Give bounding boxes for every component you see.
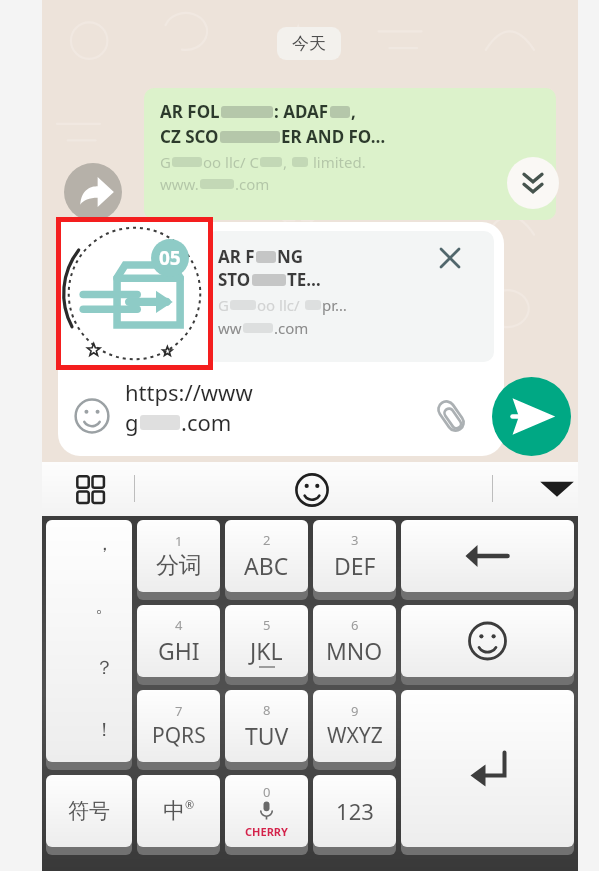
button[interactable]: Forward bbox=[64, 163, 122, 221]
staticText: 3 bbox=[351, 531, 359, 549]
button[interactable]: Keyboard layouts bbox=[72, 471, 110, 509]
staticText: 分词 bbox=[156, 551, 202, 580]
staticText: 9 bbox=[351, 702, 359, 720]
button[interactable]: Close preview bbox=[430, 238, 470, 278]
button[interactable]: Highlighted sticker bbox=[56, 217, 213, 370]
button[interactable]: 3 bbox=[313, 520, 396, 592]
staticText: .com bbox=[235, 174, 270, 194]
staticText: 今天 bbox=[292, 33, 326, 54]
button[interactable]: 9 bbox=[313, 690, 396, 762]
staticText: 中 bbox=[163, 797, 185, 825]
staticText: www. bbox=[160, 174, 199, 194]
staticText: 。 bbox=[95, 594, 114, 618]
button[interactable]: 1 bbox=[137, 520, 220, 592]
staticText: 6 bbox=[351, 616, 359, 634]
button[interactable]: 今天 bbox=[277, 27, 341, 60]
button[interactable]: Backspace bbox=[401, 520, 574, 592]
staticText: TE… bbox=[287, 268, 321, 291]
staticText: 8 bbox=[263, 701, 271, 719]
staticText: CZ SCO bbox=[160, 125, 219, 148]
button[interactable]: AR FOL bbox=[144, 88, 556, 220]
staticText: 123 bbox=[336, 796, 374, 826]
button[interactable]: 7 bbox=[137, 690, 220, 762]
staticText: NG bbox=[277, 245, 304, 268]
staticText: pr… bbox=[322, 295, 347, 315]
staticText: .com bbox=[181, 407, 232, 437]
button[interactable]: Scroll to bottom bbox=[507, 157, 559, 209]
button[interactable]: Attach bbox=[429, 394, 473, 438]
button[interactable]: 8 bbox=[225, 690, 308, 762]
staticText: 0 bbox=[263, 783, 271, 801]
button[interactable]: ， bbox=[46, 520, 132, 762]
button[interactable]: Emoji bbox=[71, 395, 113, 437]
staticText: ® bbox=[185, 797, 195, 812]
staticText: G bbox=[160, 152, 171, 172]
staticText: g bbox=[125, 407, 139, 437]
staticText: GHI bbox=[158, 635, 200, 666]
staticText: 1 bbox=[175, 532, 183, 550]
staticText: https://www bbox=[125, 377, 253, 407]
staticText: MNO bbox=[326, 635, 383, 666]
staticText: JKL bbox=[250, 635, 283, 666]
staticText: oo llc/ C bbox=[203, 152, 259, 172]
staticText: TUV bbox=[245, 720, 289, 751]
staticText: , bbox=[283, 152, 291, 172]
staticText: : ADAF bbox=[274, 100, 329, 123]
staticText: 符号 bbox=[68, 798, 110, 824]
staticText: PQRS bbox=[152, 721, 206, 750]
staticText: 4 bbox=[175, 616, 183, 634]
button[interactable]: 2 bbox=[225, 520, 308, 592]
staticText: WXYZ bbox=[327, 721, 383, 750]
staticText: G bbox=[218, 295, 229, 315]
button[interactable]: Hide keyboard bbox=[536, 476, 578, 502]
button[interactable]: Emoji bbox=[292, 470, 332, 510]
button[interactable]: 符号 bbox=[46, 775, 132, 847]
staticText: ABC bbox=[244, 550, 289, 581]
button[interactable]: 123 bbox=[313, 775, 396, 847]
button[interactable]: 4 bbox=[137, 605, 220, 677]
staticText: CHERRY bbox=[245, 824, 288, 839]
staticText: ， bbox=[95, 532, 114, 556]
staticText: 2 bbox=[263, 531, 271, 549]
button[interactable]: Send bbox=[492, 377, 571, 456]
staticText: limited. bbox=[309, 152, 366, 172]
button[interactable]: 0 bbox=[225, 775, 308, 847]
staticText: AR F bbox=[218, 245, 255, 268]
button[interactable]: 5 bbox=[225, 605, 308, 677]
button[interactable]: Enter bbox=[401, 690, 574, 847]
staticText: ER AND FO… bbox=[281, 125, 386, 148]
staticText: 7 bbox=[175, 702, 183, 720]
staticText: STO bbox=[218, 268, 251, 291]
staticText: DEF bbox=[334, 550, 376, 581]
staticText: ？ bbox=[95, 656, 114, 680]
staticText: 05 bbox=[159, 245, 181, 271]
button[interactable]: 6 bbox=[313, 605, 396, 677]
staticText: ！ bbox=[95, 718, 114, 742]
staticText: ww bbox=[218, 318, 242, 338]
staticText: oo llc/ bbox=[257, 295, 304, 315]
button[interactable]: AR F bbox=[206, 231, 494, 362]
button[interactable]: 中 bbox=[137, 775, 220, 847]
button[interactable]: Emoji bbox=[401, 605, 574, 677]
staticText: .com bbox=[274, 318, 309, 338]
staticText: , bbox=[351, 100, 356, 123]
staticText: 5 bbox=[263, 616, 271, 634]
staticText: AR FOL bbox=[160, 100, 220, 123]
